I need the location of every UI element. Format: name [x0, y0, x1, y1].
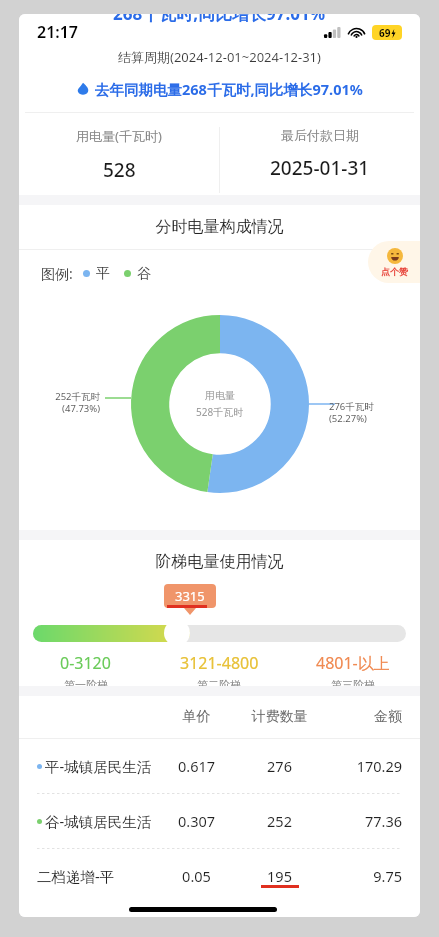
staticText: 平-城镇居民生活: [45, 756, 152, 776]
staticText: 0-3120: [60, 652, 111, 674]
button[interactable]: 二档递增-平: [19, 849, 420, 903]
button[interactable]: 点个赞: [368, 241, 420, 283]
staticText: 去年同期电量268千瓦时,同比增长97.01%: [95, 79, 363, 99]
staticText: 3315: [175, 587, 205, 605]
staticText: 4801-以上: [316, 652, 390, 674]
staticText: 结算周期(2024-12-01~2024-12-31): [118, 48, 321, 66]
staticText: 用电量: [205, 389, 235, 402]
staticText: 268千瓦时,同比增长97.01%: [113, 14, 326, 25]
staticText: 0.617: [157, 756, 236, 776]
staticText: 195: [236, 866, 323, 886]
staticText: 点个赞: [381, 266, 408, 277]
staticText: 最后付款日期: [281, 127, 359, 143]
staticText: 528千瓦时: [196, 405, 244, 419]
staticText: 0.307: [157, 811, 236, 831]
staticText: 252千瓦时 (47.73%): [55, 390, 100, 415]
staticText: 图例:: [41, 264, 73, 283]
staticText: 21:17: [37, 21, 79, 43]
staticText: 69: [379, 26, 391, 40]
staticText: 0.05: [157, 866, 236, 886]
button[interactable]: 谷-城镇居民生活: [19, 794, 420, 848]
staticText: 2025-01-31: [270, 155, 370, 181]
staticText: 170.29: [323, 756, 402, 776]
staticText: 第二阶梯: [197, 678, 241, 686]
staticText: 276: [236, 756, 323, 776]
staticText: 252: [236, 811, 323, 831]
staticText: 9.75: [323, 866, 402, 886]
staticText: 用电量(千瓦时): [76, 127, 162, 145]
staticText: 276千瓦时 (52.27%): [329, 400, 374, 425]
staticText: 谷-城镇居民生活: [45, 811, 152, 831]
staticText: 谷: [137, 265, 151, 283]
button[interactable]: 平-城镇居民生活: [19, 739, 420, 793]
staticText: 阶梯电量使用情况: [19, 552, 420, 572]
staticText: 平: [96, 265, 110, 283]
staticText: 计费数量: [236, 708, 323, 726]
staticText: 528: [103, 157, 136, 183]
staticText: 3121-4800: [180, 652, 259, 674]
staticText: 分时电量构成情况: [19, 217, 420, 237]
staticText: 金额: [323, 708, 402, 726]
staticText: 二档递增-平: [37, 866, 157, 886]
staticText: 第一阶梯: [64, 678, 108, 686]
staticText: 单价: [157, 708, 236, 726]
staticText: 第三阶梯: [331, 678, 375, 686]
staticText: 77.36: [323, 811, 402, 831]
